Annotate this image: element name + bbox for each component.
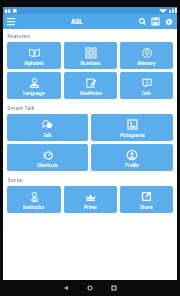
button[interactable]: Shortcuts bbox=[7, 144, 88, 171]
staticText: Pictograms bbox=[120, 132, 145, 138]
staticText: Instructor bbox=[23, 204, 45, 210]
staticText: Memory bbox=[137, 60, 156, 66]
button[interactable]: Home bbox=[78, 280, 102, 296]
button[interactable]: Language bbox=[7, 72, 61, 99]
staticText: Share bbox=[140, 204, 153, 210]
button[interactable]: Save bbox=[149, 14, 162, 29]
staticText: Alphabet bbox=[24, 60, 44, 66]
button[interactable]: Share bbox=[120, 186, 173, 213]
staticText: DeafVoice bbox=[80, 90, 102, 96]
button[interactable]: Prime bbox=[64, 186, 117, 213]
staticText: Smart Talk bbox=[7, 104, 35, 112]
button[interactable]: Pictograms bbox=[91, 114, 173, 141]
button[interactable]: Open navigation menu bbox=[3, 14, 18, 29]
button[interactable]: Numbers bbox=[64, 42, 117, 69]
staticText: Numbers bbox=[80, 60, 101, 66]
staticText: Language bbox=[23, 90, 45, 96]
button[interactable]: Memory bbox=[120, 42, 173, 69]
staticText: Profile bbox=[125, 162, 139, 168]
button[interactable]: Search bbox=[136, 14, 149, 29]
button[interactable]: Instructor bbox=[7, 186, 61, 213]
staticText: Prime bbox=[84, 204, 97, 210]
staticText: Social bbox=[7, 176, 23, 184]
staticText: Features bbox=[7, 32, 30, 40]
button[interactable]: Talk bbox=[7, 114, 88, 141]
button[interactable]: Settings bbox=[162, 14, 175, 29]
button[interactable]: Info bbox=[120, 72, 173, 99]
button[interactable]: Recent apps bbox=[102, 280, 126, 296]
staticText: ASL bbox=[71, 17, 83, 26]
button[interactable]: Alphabet bbox=[7, 42, 61, 69]
staticText: Shortcuts bbox=[37, 162, 58, 168]
button[interactable]: Profile bbox=[91, 144, 173, 171]
button[interactable]: DeafVoice bbox=[64, 72, 117, 99]
staticText: Info bbox=[142, 90, 151, 96]
button[interactable]: Back bbox=[54, 280, 78, 296]
staticText: Talk bbox=[43, 132, 52, 138]
